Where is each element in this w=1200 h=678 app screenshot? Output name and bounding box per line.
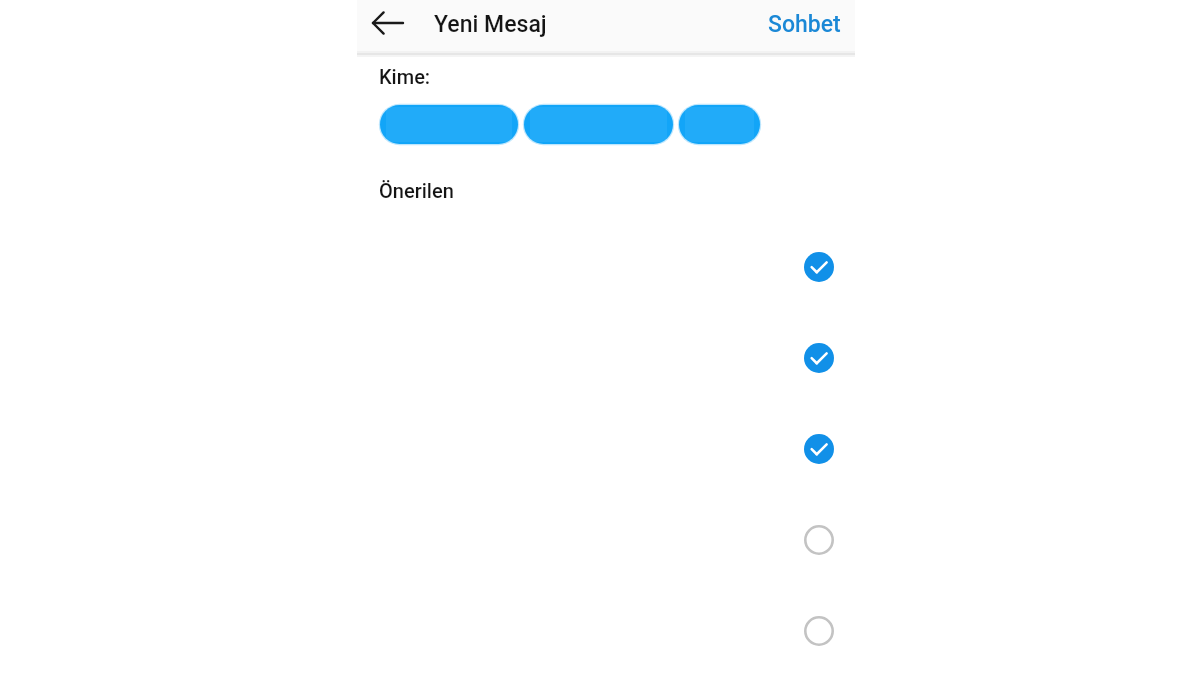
other: Not selected [804,525,834,555]
staticText: Sohbet [768,11,841,38]
other: Not selected [804,616,834,646]
other: Selected [804,252,834,282]
other: Selected [804,343,834,373]
button[interactable]: Selected [357,312,855,403]
button[interactable]: Sohbet [750,0,858,49]
button[interactable]: Recipient [679,105,760,144]
button[interactable]: Not selected [357,585,855,676]
staticText: Yeni Mesaj [434,11,547,38]
button[interactable]: Selected [357,403,855,494]
button[interactable]: Not selected [357,494,855,585]
button[interactable]: Back [363,0,412,47]
staticText: Kime: [379,65,431,88]
button[interactable]: Recipient [380,105,518,144]
button[interactable]: Recipient [524,105,673,144]
staticText: Önerilen [379,179,454,202]
button[interactable]: Selected [357,221,855,312]
other: Selected [804,434,834,464]
